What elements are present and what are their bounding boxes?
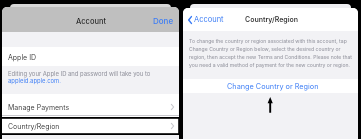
staticText: appleid.apple.com. [8, 77, 61, 84]
other: Highlighted Country/Region row [0, 117, 180, 135]
button[interactable]: Manage Payments [2, 94, 179, 115]
other: Arrow pointing to Change Country or Regi… [264, 94, 277, 116]
staticText: Change Country or Region below, select t… [189, 46, 341, 52]
staticText: you need a valid method of payment for t… [189, 62, 350, 68]
button[interactable]: Change Country or Region [183, 79, 358, 93]
button[interactable]: Account [186, 15, 226, 24]
button[interactable]: Country/Region [2, 115, 179, 134]
staticText: Editing your Apple ID and password will … [8, 70, 151, 77]
staticText: Done [153, 16, 174, 26]
staticText: Account [194, 15, 224, 24]
staticText: Manage Payments [8, 103, 70, 111]
staticText: Country/Region [8, 122, 60, 130]
staticText: region, then accept the new Terms and Co… [189, 54, 352, 60]
button[interactable]: Done [153, 16, 174, 26]
button[interactable]: Apple ID [2, 47, 179, 66]
staticText: Apple ID [8, 53, 37, 61]
staticText: To change the country or region associat… [189, 38, 347, 44]
staticText: Country/Region [245, 15, 299, 23]
staticText: Change Country or Region [227, 82, 319, 91]
staticText: Account [76, 17, 107, 26]
